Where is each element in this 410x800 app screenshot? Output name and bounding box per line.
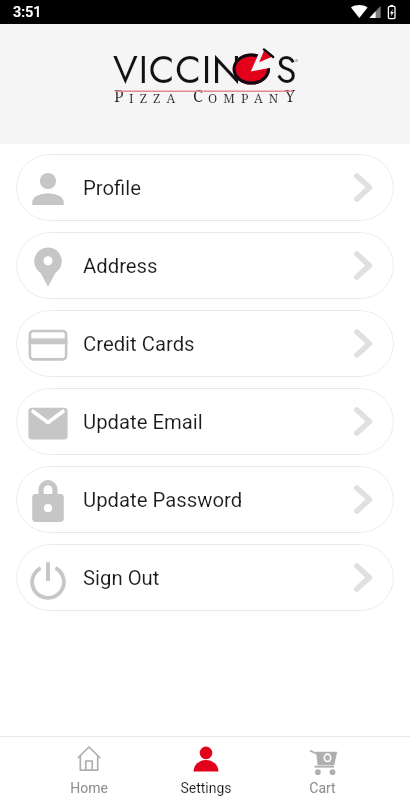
button[interactable]: Address <box>16 232 394 299</box>
staticText: Sign Out <box>83 566 160 590</box>
staticText: C <box>193 85 208 107</box>
staticText: Update Email <box>83 410 203 434</box>
staticText: Profile <box>83 176 142 200</box>
staticText: S <box>276 43 297 97</box>
staticText: IZZA <box>129 90 182 107</box>
staticText: Credit Cards <box>83 332 195 356</box>
button[interactable]: Update Email <box>16 388 394 455</box>
button[interactable]: Settings <box>147 737 264 800</box>
button[interactable]: Credit Cards <box>16 310 394 377</box>
staticText: Cart <box>309 780 336 796</box>
staticText: Y <box>285 85 300 107</box>
staticText: VICCIN <box>113 43 242 97</box>
staticText: P <box>114 85 129 107</box>
staticText: Home <box>70 780 108 796</box>
button[interactable]: Home <box>30 737 147 800</box>
staticText: Settings <box>180 780 232 796</box>
button[interactable]: Update Password <box>16 466 394 533</box>
button[interactable]: Sign Out <box>16 544 394 611</box>
staticText: Update Password <box>83 488 243 512</box>
button[interactable]: Profile <box>16 154 394 221</box>
staticText: 3:51 <box>13 4 42 21</box>
staticText: OMPAN <box>208 90 285 107</box>
staticText: Address <box>83 254 158 278</box>
button[interactable]: Cart <box>264 737 381 800</box>
